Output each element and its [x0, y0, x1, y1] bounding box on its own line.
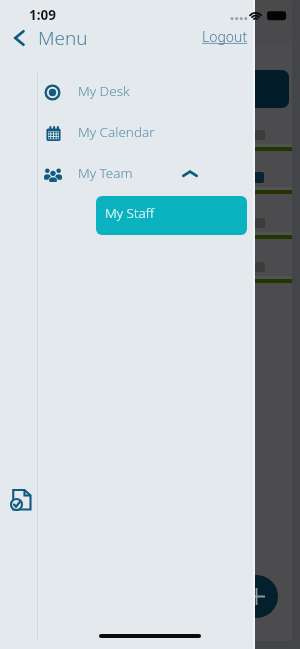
button[interactable]: My Desk [0, 72, 255, 113]
staticText: My Staff [105, 204, 155, 222]
button[interactable]: Logout [202, 27, 248, 46]
staticText: My Desk [78, 82, 130, 100]
button[interactable]: Documents [9, 487, 34, 512]
button[interactable]: Collapse [181, 165, 199, 183]
staticText: My Calendar [78, 123, 155, 141]
staticText: 1:09 [29, 6, 56, 24]
button[interactable]: My Team [0, 154, 255, 195]
button[interactable]: My Calendar [0, 113, 255, 154]
staticText: Menu [38, 25, 88, 51]
staticText: My Team [78, 164, 133, 182]
staticText: Logout [202, 27, 248, 46]
button[interactable]: Add [235, 575, 278, 618]
button[interactable]: Back [11, 25, 88, 51]
button[interactable]: My Staff [96, 196, 247, 235]
other: Back [11, 30, 27, 46]
